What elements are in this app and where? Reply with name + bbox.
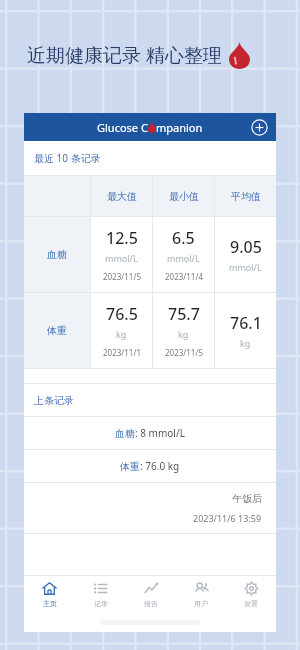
staticText: 12.5 (106, 227, 138, 249)
staticText: : 76.0 kg (140, 459, 180, 473)
staticText: 9.05 (230, 236, 262, 258)
staticText: 2023/11/5 (103, 271, 141, 282)
button[interactable]: 12.5 (91, 217, 152, 292)
staticText: mmol/L (229, 261, 262, 273)
staticText: mmol/L (105, 252, 138, 264)
staticText: 2023/11/4 (165, 271, 203, 282)
staticText: Glucose C (97, 120, 148, 135)
button[interactable]: 9.05 (215, 217, 276, 292)
button[interactable]: 76.1 (215, 293, 276, 368)
button[interactable]: Add record (248, 116, 270, 138)
staticText: 报告 (144, 599, 158, 608)
staticText: 76.1 (230, 312, 262, 334)
staticText: 近期健康记录 精心整理 (27, 42, 222, 68)
staticText: 上条记录 (34, 394, 74, 407)
staticText: 6.5 (172, 227, 195, 249)
staticText: 用户 (194, 599, 208, 608)
staticText: : 8 mmol/L (135, 426, 185, 440)
button[interactable]: 报告 (126, 576, 176, 612)
button[interactable]: 血糖 (24, 217, 90, 292)
staticText: 最近 10 条记录 (34, 151, 101, 165)
button[interactable]: 血糖 (24, 417, 276, 449)
staticText: 2023/11/1 (103, 347, 141, 358)
staticText: 午饭后 (232, 492, 262, 505)
staticText: 记录 (94, 599, 108, 608)
button[interactable]: 体重 (24, 293, 90, 368)
staticText: kg (240, 337, 251, 349)
button[interactable]: 主页 (24, 576, 75, 612)
staticText: 平均值 (231, 190, 261, 203)
button[interactable]: 6.5 (153, 217, 214, 292)
button[interactable]: 设置 (226, 576, 276, 612)
staticText: 最小值 (169, 190, 199, 203)
staticText: 主页 (43, 599, 57, 608)
staticText: 血糖 (47, 248, 67, 261)
button[interactable]: 记录 (75, 576, 126, 612)
staticText: kg (116, 328, 127, 340)
staticText: 2023/11/6 13:59 (193, 512, 262, 524)
staticText: 最大值 (107, 190, 137, 203)
staticText: 体重 (47, 324, 67, 337)
staticText: 血糖 (115, 427, 135, 440)
staticText: mmol/L (167, 252, 200, 264)
staticText: kg (178, 328, 189, 340)
button[interactable]: 体重 (24, 450, 276, 482)
staticText: 体重 (120, 460, 140, 473)
button[interactable]: 75.7 (153, 293, 214, 368)
staticText: 76.5 (106, 303, 138, 325)
staticText: 75.7 (168, 303, 200, 325)
staticText: mpanion (156, 120, 203, 135)
button[interactable]: 76.5 (91, 293, 152, 368)
button[interactable]: 用户 (176, 576, 226, 612)
staticText: 2023/11/5 (165, 347, 203, 358)
staticText: 设置 (244, 599, 258, 608)
